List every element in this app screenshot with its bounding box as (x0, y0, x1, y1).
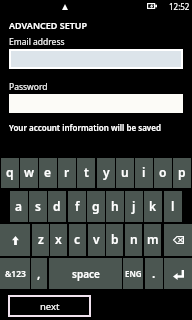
button[interactable]: g (87, 191, 105, 222)
staticText: Your account information will be saved (9, 122, 161, 133)
button[interactable]: u (116, 158, 134, 188)
button[interactable]: l (164, 191, 182, 222)
staticText: ADVANCED SETUP (9, 19, 88, 31)
staticText: &123 (5, 268, 26, 280)
button[interactable]: Shift (0, 224, 30, 256)
button[interactable]: i (135, 158, 153, 188)
staticText: d (53, 198, 61, 214)
staticText: s (35, 198, 41, 214)
button[interactable]: o (154, 158, 172, 188)
staticText: . (152, 265, 156, 281)
button[interactable]: h (106, 191, 124, 222)
staticText: y (103, 164, 110, 180)
button[interactable]: e (39, 158, 57, 188)
staticText: f (75, 198, 80, 214)
staticText: e (44, 164, 52, 180)
button[interactable]: next (8, 295, 91, 317)
staticText: q (6, 164, 14, 180)
staticText: k (149, 198, 157, 214)
button[interactable]: d (48, 191, 66, 222)
button[interactable]: . (145, 258, 163, 289)
staticText: w (24, 164, 34, 180)
button[interactable]: q (1, 158, 19, 188)
staticText: t (84, 164, 89, 180)
button[interactable]: y (97, 158, 115, 188)
staticText: o (159, 164, 167, 180)
button[interactable]: , (31, 258, 47, 289)
button[interactable]: p (173, 158, 191, 188)
button[interactable]: j (125, 191, 143, 222)
button[interactable]: n (125, 224, 142, 256)
button[interactable]: Backspace (164, 224, 192, 256)
button[interactable]: x (50, 224, 67, 256)
staticText: v (93, 231, 100, 247)
button[interactable]: k (144, 191, 162, 222)
button[interactable]: v (88, 224, 105, 256)
button[interactable]: w (20, 158, 38, 188)
staticText: j (132, 198, 136, 214)
button[interactable]: ENG (123, 258, 143, 289)
staticText: next (40, 300, 60, 313)
staticText: Email address (9, 36, 65, 48)
staticText: Password (9, 81, 48, 93)
button[interactable]: r (58, 158, 76, 188)
staticText: z (38, 231, 44, 247)
staticText: x (55, 231, 62, 247)
staticText: n (130, 231, 138, 247)
staticText: 12:52 (169, 1, 190, 12)
button[interactable]: &123 (0, 258, 30, 289)
staticText: p (178, 164, 186, 180)
staticText: a (15, 198, 23, 214)
button[interactable]: b (106, 224, 123, 256)
button[interactable]: Enter (164, 258, 192, 289)
staticText: r (64, 164, 70, 180)
button[interactable]: s (29, 191, 47, 222)
button[interactable]: c (69, 224, 86, 256)
button[interactable]: z (32, 224, 49, 256)
staticText: l (171, 198, 175, 214)
staticText: h (111, 198, 119, 214)
staticText: b (111, 231, 119, 247)
button[interactable]: m (144, 224, 161, 256)
button[interactable]: a (10, 191, 28, 222)
button[interactable]: space (49, 258, 122, 289)
staticText: g (92, 198, 100, 214)
button[interactable]: f (68, 191, 86, 222)
staticText: u (121, 164, 129, 180)
staticText: c (74, 231, 81, 247)
staticText: space (72, 267, 100, 281)
staticText: m (147, 231, 159, 247)
staticText: ENG (125, 268, 142, 279)
staticText: i (142, 164, 146, 180)
button[interactable]: t (77, 158, 95, 188)
staticText: , (37, 265, 41, 281)
